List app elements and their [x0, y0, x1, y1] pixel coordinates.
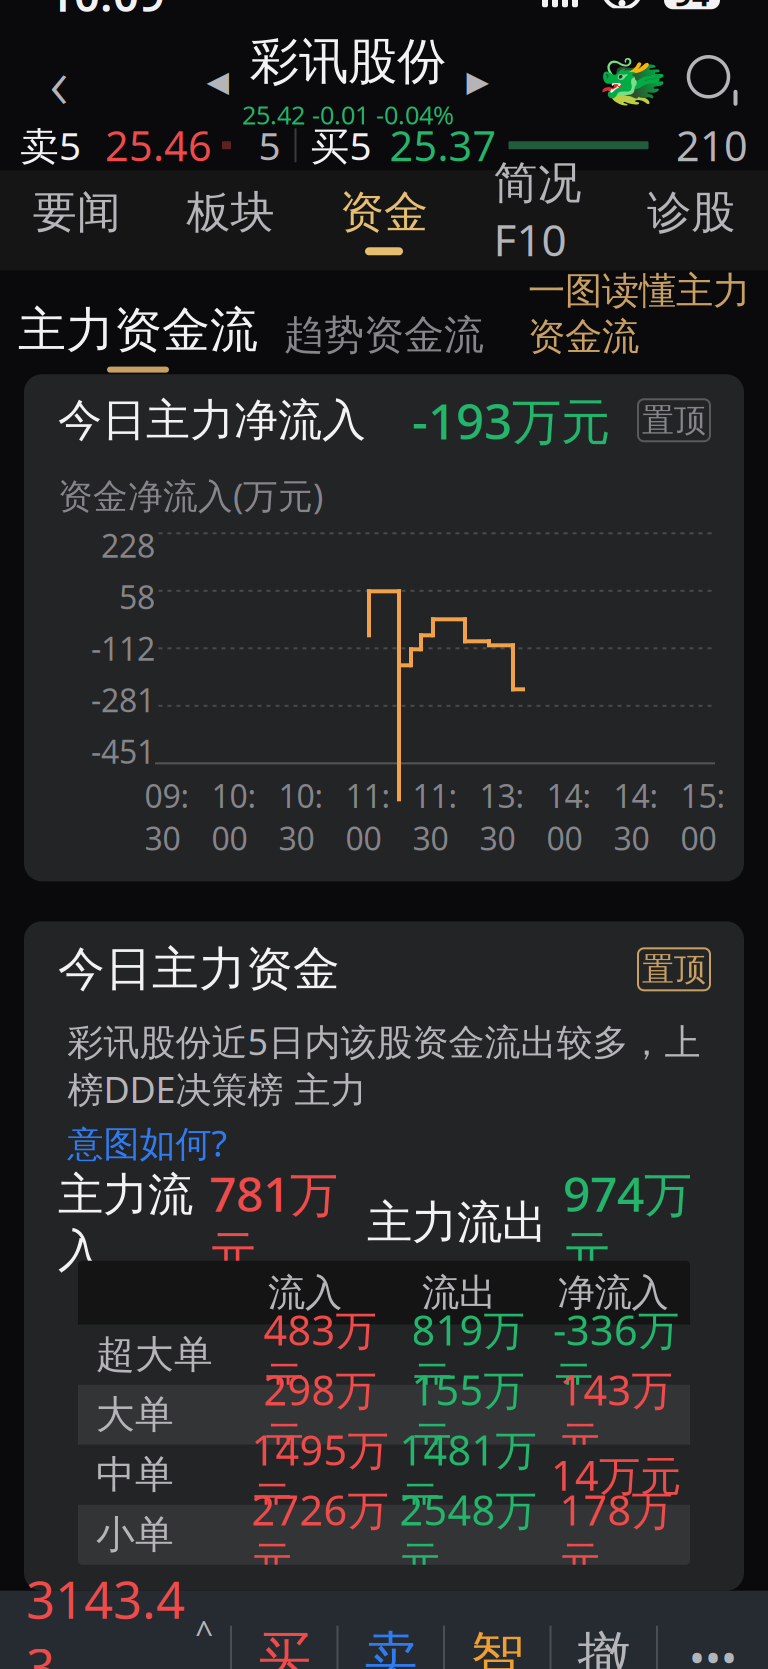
button[interactable]: 简况F10: [461, 170, 614, 270]
staticText: 298万元: [263, 1362, 376, 1468]
button[interactable]: 智: [445, 1591, 549, 1669]
staticText: 流出: [422, 1270, 496, 1316]
staticText: 超大单: [96, 1331, 213, 1378]
staticText: 置顶: [642, 950, 706, 989]
staticText: 智: [471, 1624, 524, 1669]
staticText: 意图如何?: [67, 1119, 227, 1167]
staticText: 11:00: [345, 774, 390, 859]
staticText: ‹: [49, 33, 68, 129]
staticText: 13:30: [479, 774, 524, 859]
button[interactable]: 置顶: [638, 399, 710, 441]
staticText: 主力资金流: [18, 301, 258, 360]
button[interactable]: 创业板指数 3143.43: [0, 1565, 230, 1669]
staticText: 974万元: [563, 1161, 692, 1284]
staticText: 25.42 -0.01 -0.04%: [242, 98, 454, 131]
staticText: 撤: [577, 1624, 630, 1669]
staticText: 今日主力净流入: [58, 393, 366, 447]
staticText: 小单: [96, 1511, 174, 1558]
button[interactable]: 要闻: [0, 170, 154, 270]
staticText: 简况F10: [494, 156, 582, 268]
button[interactable]: 主力资金流: [18, 301, 258, 373]
staticText: -193万元: [412, 387, 610, 453]
staticText: 178万元: [559, 1482, 672, 1588]
staticText: 买5: [310, 120, 371, 171]
staticText: 一图读懂主力资金流: [528, 268, 750, 360]
button[interactable]: 一图读懂主力资金流: [528, 268, 750, 373]
button[interactable]: 资金: [307, 170, 461, 270]
staticText: 要闻: [33, 185, 121, 239]
staticText: ^: [195, 1611, 213, 1654]
button[interactable]: Search: [682, 46, 744, 116]
staticText: 3143.43: [26, 1565, 185, 1669]
staticText: •••: [689, 1628, 737, 1669]
staticText: 板块: [186, 185, 274, 239]
staticText: ◀: [206, 65, 229, 98]
staticText: 58: [119, 576, 155, 618]
staticText: 主力流出: [367, 1195, 547, 1251]
staticText: 主力流入: [58, 1167, 193, 1278]
staticText: 25.46: [105, 118, 212, 173]
staticText: 14:30: [613, 774, 658, 859]
staticText: 净流入: [557, 1270, 668, 1316]
button[interactable]: 撤: [551, 1591, 656, 1669]
staticText: 10:30: [278, 774, 323, 859]
button[interactable]: 卖: [338, 1591, 443, 1669]
staticText: -336万元: [553, 1302, 679, 1408]
staticText: 大单: [96, 1391, 174, 1438]
staticText: 资金: [340, 185, 428, 239]
staticText: 🐲: [598, 49, 668, 113]
staticText: 卖5: [20, 120, 81, 171]
staticText: 1495万元: [251, 1422, 388, 1528]
staticText: 资金净流入(万元): [58, 472, 323, 518]
staticText: 2726万元: [251, 1482, 388, 1588]
staticText: -451: [91, 730, 155, 773]
button[interactable]: Back: [24, 42, 94, 120]
staticText: -112: [91, 627, 155, 670]
staticText: 210: [676, 118, 748, 173]
staticText: 卖: [364, 1624, 417, 1669]
button[interactable]: 意图如何?: [67, 1119, 227, 1167]
staticText: 14万元: [551, 1447, 681, 1502]
button[interactable]: Profile: [602, 50, 664, 112]
staticText: 彩讯股份近5日内该股资金流出较多，上榜DDE决策榜 主力: [67, 1017, 700, 1113]
button[interactable]: Previous stock: [196, 46, 240, 116]
staticText: 诊股: [647, 185, 735, 239]
button[interactable]: More: [658, 1591, 768, 1669]
button[interactable]: 诊股: [614, 170, 768, 270]
staticText: 09:30: [144, 774, 189, 859]
staticText: 483万元: [263, 1302, 376, 1408]
staticText: 781万元: [209, 1161, 338, 1284]
staticText: 94: [674, 0, 710, 15]
staticText: 趋势资金流: [284, 310, 484, 360]
staticText: 2548万元: [399, 1482, 536, 1588]
button[interactable]: 置顶: [638, 948, 710, 990]
button[interactable]: 板块: [154, 170, 307, 270]
staticText: 1481万元: [399, 1422, 536, 1528]
staticText: 15:00: [680, 774, 725, 859]
staticText: 5: [258, 120, 280, 171]
staticText: 228: [101, 524, 155, 567]
staticText: 置顶: [642, 401, 706, 440]
button[interactable]: 买: [232, 1591, 336, 1669]
staticText: 155万元: [411, 1362, 524, 1468]
staticText: 25.37: [389, 118, 496, 173]
staticText: 14:00: [546, 774, 591, 859]
staticText: 今日主力资金: [58, 941, 340, 998]
staticText: 10:09: [48, 0, 165, 24]
staticText: 中单: [96, 1451, 174, 1498]
button[interactable]: Next stock: [456, 46, 500, 116]
staticText: 10:00: [211, 774, 256, 859]
staticText: 143万元: [559, 1362, 672, 1468]
button[interactable]: 趋势资金流: [284, 310, 484, 373]
staticText: 流入: [268, 1270, 342, 1316]
staticText: 11:30: [412, 774, 457, 859]
staticText: 彩讯股份: [250, 31, 446, 92]
staticText: -281: [91, 679, 155, 721]
staticText: 819万元: [411, 1302, 524, 1408]
staticText: 买: [258, 1624, 311, 1669]
staticText: ▶: [466, 65, 489, 98]
